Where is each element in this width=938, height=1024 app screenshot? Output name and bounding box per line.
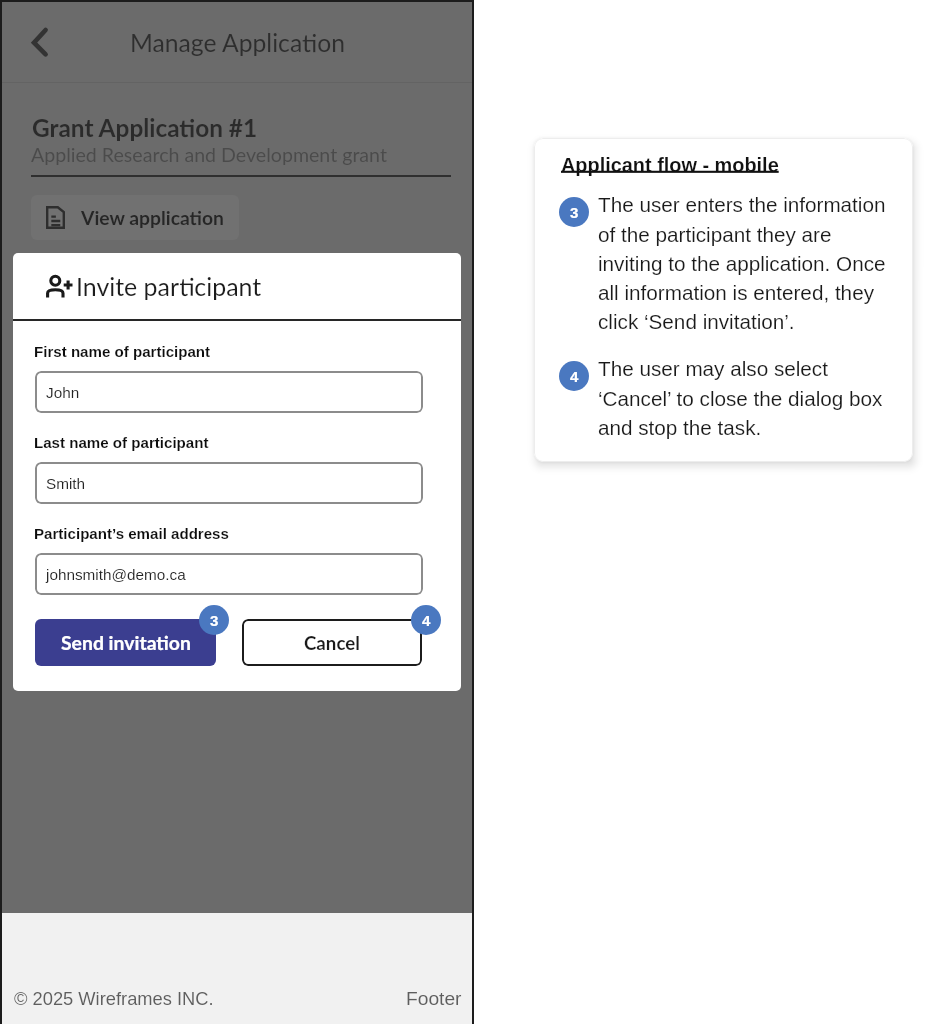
staticText: 3 <box>570 204 579 221</box>
button[interactable]: Back <box>17 16 62 61</box>
staticText: Last name of participant <box>34 434 209 451</box>
staticText: Participant’s email address <box>34 525 229 542</box>
button[interactable]: View application <box>31 195 239 240</box>
button[interactable]: Send invitation <box>35 619 216 666</box>
staticText: First name of participant <box>34 343 211 360</box>
staticText: The user may also select ‘Cancel’ to clo… <box>598 357 890 439</box>
staticText: 3 <box>210 612 219 629</box>
staticText: View application <box>81 206 225 229</box>
button[interactable]: johnsmith@demo.ca <box>35 553 423 595</box>
staticText: Invite participant <box>76 271 262 301</box>
button[interactable]: Smith <box>35 462 423 504</box>
staticText: Grant Application #1 <box>32 113 258 142</box>
staticText: Applicant flow - mobile <box>561 154 779 176</box>
staticText: Applied Research and Development grant <box>31 143 387 167</box>
staticText: John <box>46 384 80 401</box>
staticText: 4 <box>422 612 431 629</box>
staticText: Smith <box>46 475 86 492</box>
staticText: Cancel <box>304 632 360 654</box>
button[interactable]: Cancel <box>242 619 422 666</box>
button[interactable]: John <box>35 371 423 413</box>
staticText: 4 <box>570 368 579 385</box>
staticText: © 2025 Wireframes INC. <box>14 988 214 1008</box>
staticText: johnsmith@demo.ca <box>46 566 186 583</box>
staticText: Manage Application <box>130 28 346 58</box>
staticText: Send invitation <box>61 631 191 654</box>
staticText: Footer <box>406 988 462 1009</box>
staticText: The user enters the information of the p… <box>598 193 890 333</box>
